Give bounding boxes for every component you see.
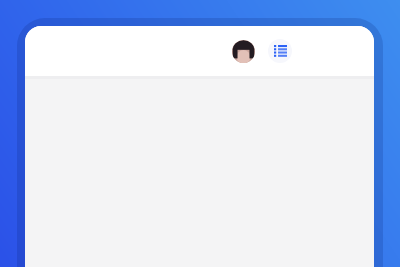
button[interactable]: View list: [268, 39, 292, 63]
button[interactable]: Profile: [232, 40, 255, 63]
